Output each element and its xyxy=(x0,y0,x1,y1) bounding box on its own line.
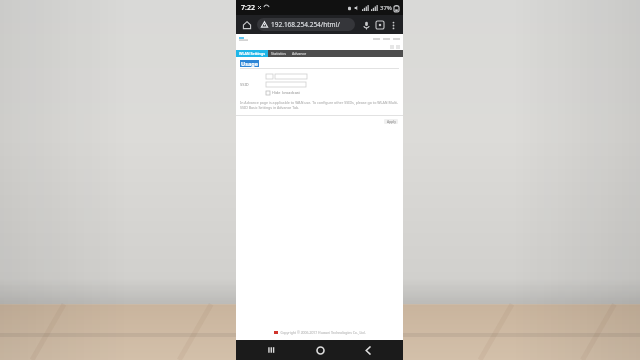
button[interactable]: Advance xyxy=(289,50,310,57)
button[interactable]: Apply xyxy=(384,119,398,124)
button[interactable]: Home xyxy=(307,340,333,360)
button[interactable]: Input field xyxy=(266,74,273,79)
staticText: 192.168.254.254/html/wifiset… xyxy=(271,20,351,29)
staticText: Hide broadcast xyxy=(272,90,300,95)
button[interactable]: Tabs xyxy=(373,18,387,32)
button[interactable]: Voice search xyxy=(359,18,373,32)
staticText: WLAN Settings xyxy=(239,51,265,56)
staticText: Usage xyxy=(241,60,258,67)
button[interactable]: Home xyxy=(240,18,254,32)
button[interactable]: WLAN Settings xyxy=(236,50,268,57)
button[interactable]: 192.168.254.254/html/wifiset… xyxy=(257,18,355,31)
staticText: Copyright © 2006-2017 Huawei Technologie… xyxy=(280,330,366,335)
staticText: Advance xyxy=(292,51,307,56)
button[interactable]: Input field xyxy=(266,82,306,87)
staticText: 37% xyxy=(380,4,392,12)
button[interactable]: Statistics xyxy=(268,50,289,57)
button[interactable]: Input field xyxy=(275,74,307,79)
staticText: SSID xyxy=(240,82,266,87)
button[interactable]: More options xyxy=(387,19,399,31)
staticText: Statistics xyxy=(271,51,286,56)
button[interactable]: Back xyxy=(355,340,381,360)
staticText: Apply xyxy=(387,119,396,124)
button[interactable]: Recent apps xyxy=(258,340,284,360)
staticText: 7:22 xyxy=(241,3,255,13)
staticText: In Advance page is applicable to WAN use… xyxy=(240,100,399,110)
button[interactable]: Hide broadcast xyxy=(240,90,399,95)
